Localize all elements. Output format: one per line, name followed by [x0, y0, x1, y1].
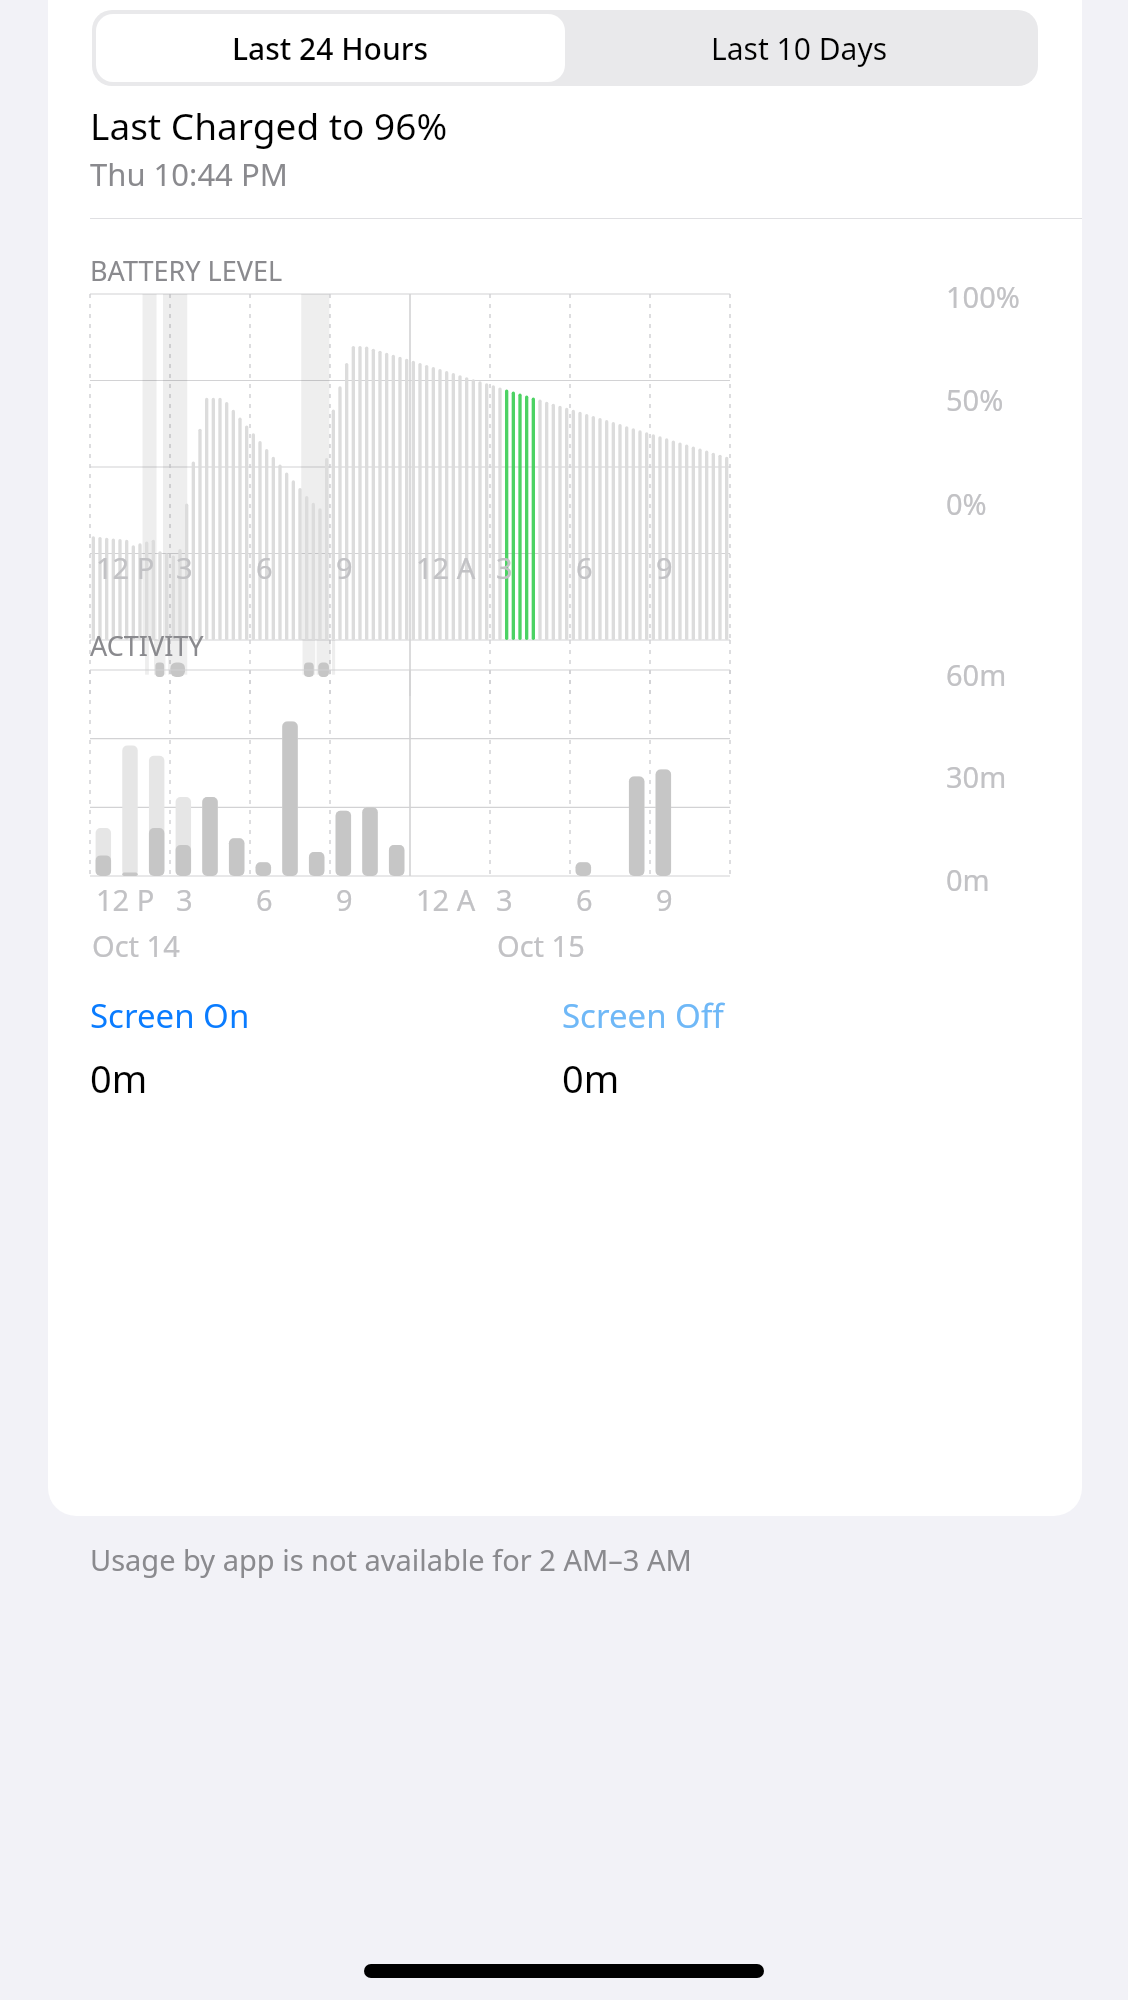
- staticText: 50%: [946, 380, 1004, 419]
- staticText: 0m: [90, 1052, 148, 1104]
- staticText: Screen Off: [562, 993, 724, 1038]
- staticText: 9: [656, 880, 673, 919]
- staticText: 12 P: [96, 548, 155, 587]
- staticText: 0%: [946, 484, 987, 523]
- staticText: 6: [256, 880, 273, 919]
- button[interactable]: Screen On: [88, 993, 418, 1104]
- staticText: 3: [176, 880, 193, 919]
- staticText: 0m: [946, 860, 990, 899]
- staticText: 12 A: [416, 548, 476, 587]
- staticText: Screen On: [90, 993, 250, 1038]
- staticText: 0m: [562, 1052, 620, 1104]
- staticText: 3: [176, 548, 193, 587]
- staticText: 6: [576, 880, 593, 919]
- staticText: 9: [336, 548, 353, 587]
- staticText: Usage by app is not available for 2 AM–3…: [90, 1540, 692, 1579]
- staticText: Last 10 Days: [711, 28, 888, 69]
- staticText: 12 A: [416, 880, 476, 919]
- staticText: 6: [576, 548, 593, 587]
- staticText: 9: [336, 880, 353, 919]
- staticText: Last 24 Hours: [232, 28, 429, 69]
- staticText: ACTIVITY: [90, 627, 204, 664]
- button[interactable]: Last 24 Hours: [96, 14, 565, 82]
- staticText: 60m: [946, 655, 1007, 694]
- staticText: 12 P: [96, 880, 155, 919]
- staticText: 6: [256, 548, 273, 587]
- staticText: Oct 15: [497, 926, 585, 965]
- staticText: Last Charged to 96%: [90, 100, 448, 150]
- staticText: 3: [496, 548, 513, 587]
- staticText: 30m: [946, 757, 1007, 796]
- staticText: Thu 10:44 PM: [90, 153, 288, 195]
- staticText: 3: [496, 880, 513, 919]
- staticText: Oct 14: [92, 926, 180, 965]
- staticText: 9: [656, 548, 673, 587]
- button[interactable]: Screen Off: [560, 993, 890, 1104]
- staticText: 100%: [946, 277, 1020, 316]
- staticText: BATTERY LEVEL: [90, 252, 283, 289]
- button[interactable]: Last 10 Days: [565, 14, 1034, 82]
